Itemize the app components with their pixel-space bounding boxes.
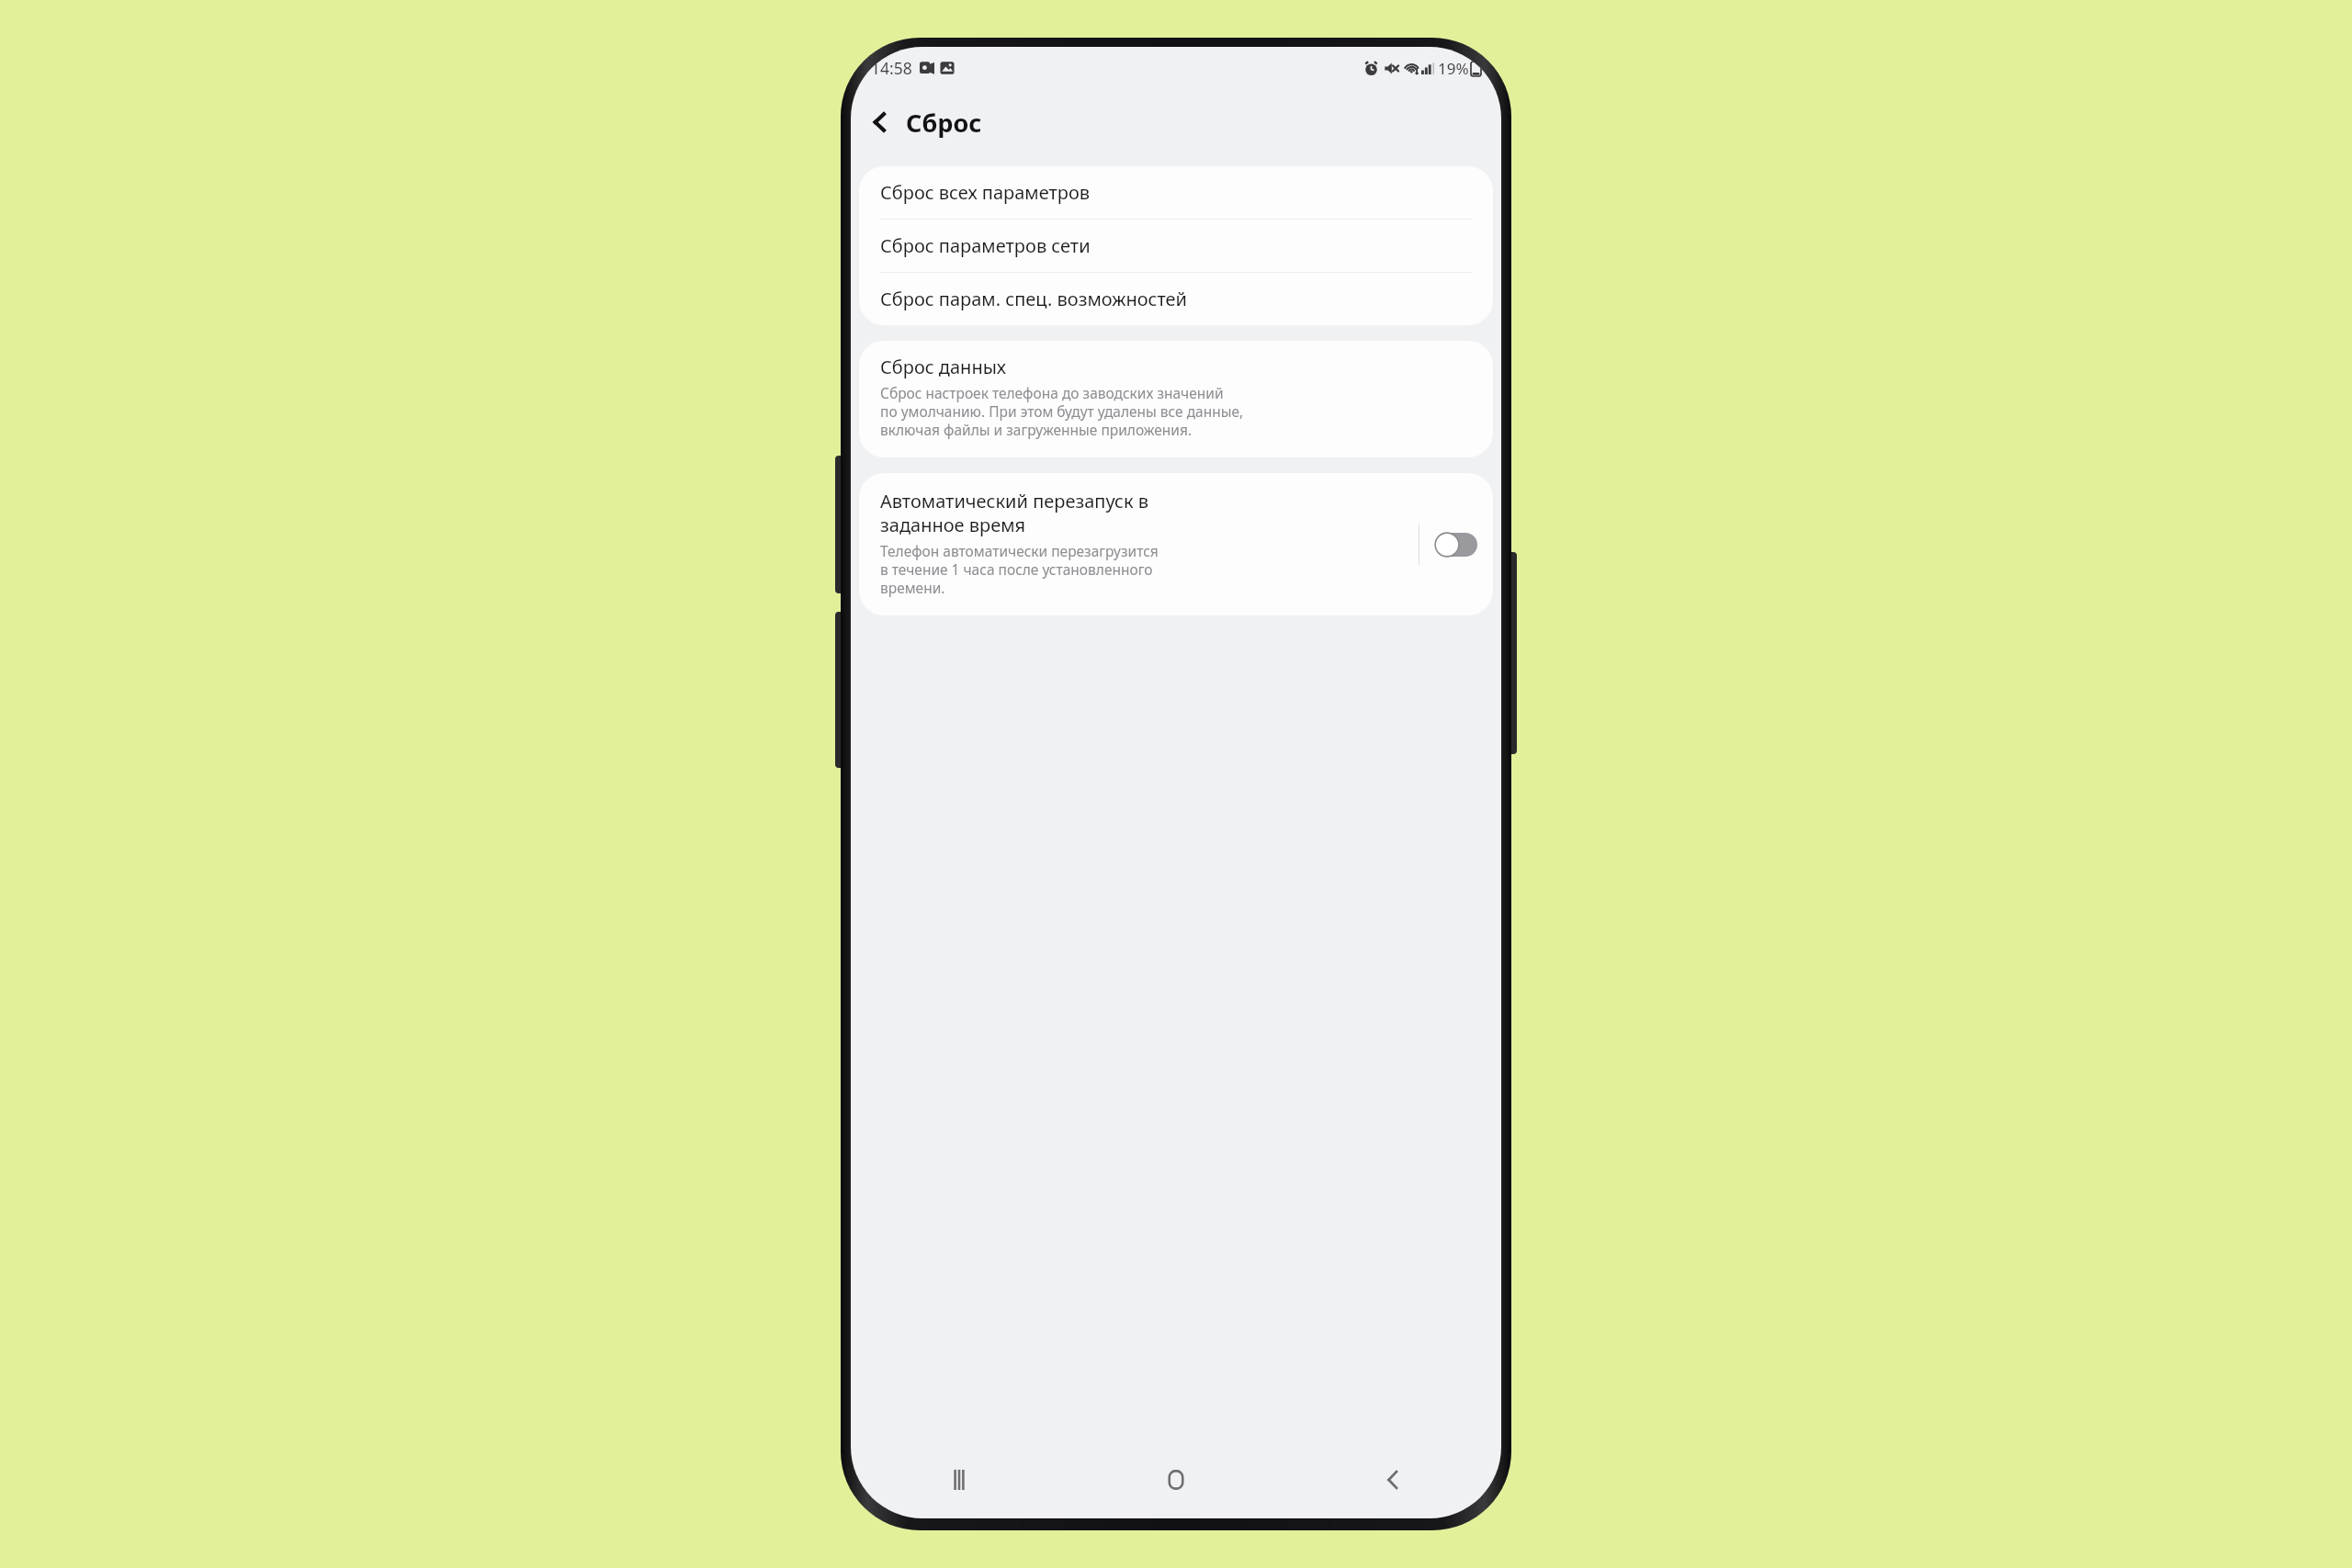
staticText: Сброс всех параметров <box>880 180 1091 205</box>
button[interactable]: Назад <box>1284 1441 1501 1518</box>
button[interactable]: Сброс всех параметров <box>859 166 1493 219</box>
staticText: Сброс парам. спец. возможностей <box>880 287 1187 311</box>
staticText: Сброс настроек телефона до заводских зна… <box>880 383 1244 440</box>
staticText: Сброс параметров сети <box>880 233 1091 258</box>
button[interactable]: Последние приложения <box>851 1441 1068 1518</box>
staticText: 19% <box>1438 58 1469 79</box>
button[interactable]: Сброс параметров сети <box>859 220 1493 272</box>
staticText: 14:58 <box>871 57 912 79</box>
button[interactable]: Автоматический перезапуск в заданное вре… <box>859 473 1419 615</box>
button[interactable]: Назад <box>858 100 902 144</box>
staticText: Телефон автоматически перезагрузится в т… <box>880 541 1159 598</box>
staticText: Автоматический перезапуск в заданное вре… <box>880 489 1148 537</box>
button[interactable]: Главный экран <box>1068 1441 1284 1518</box>
staticText: Сброс <box>906 106 982 140</box>
staticText: Сброс данных <box>880 355 1007 379</box>
button[interactable]: Сброс парам. спец. возможностей <box>859 273 1493 325</box>
button[interactable]: Сброс данных <box>859 341 1493 457</box>
button[interactable]: Автоматический перезапуск <box>1419 514 1493 575</box>
